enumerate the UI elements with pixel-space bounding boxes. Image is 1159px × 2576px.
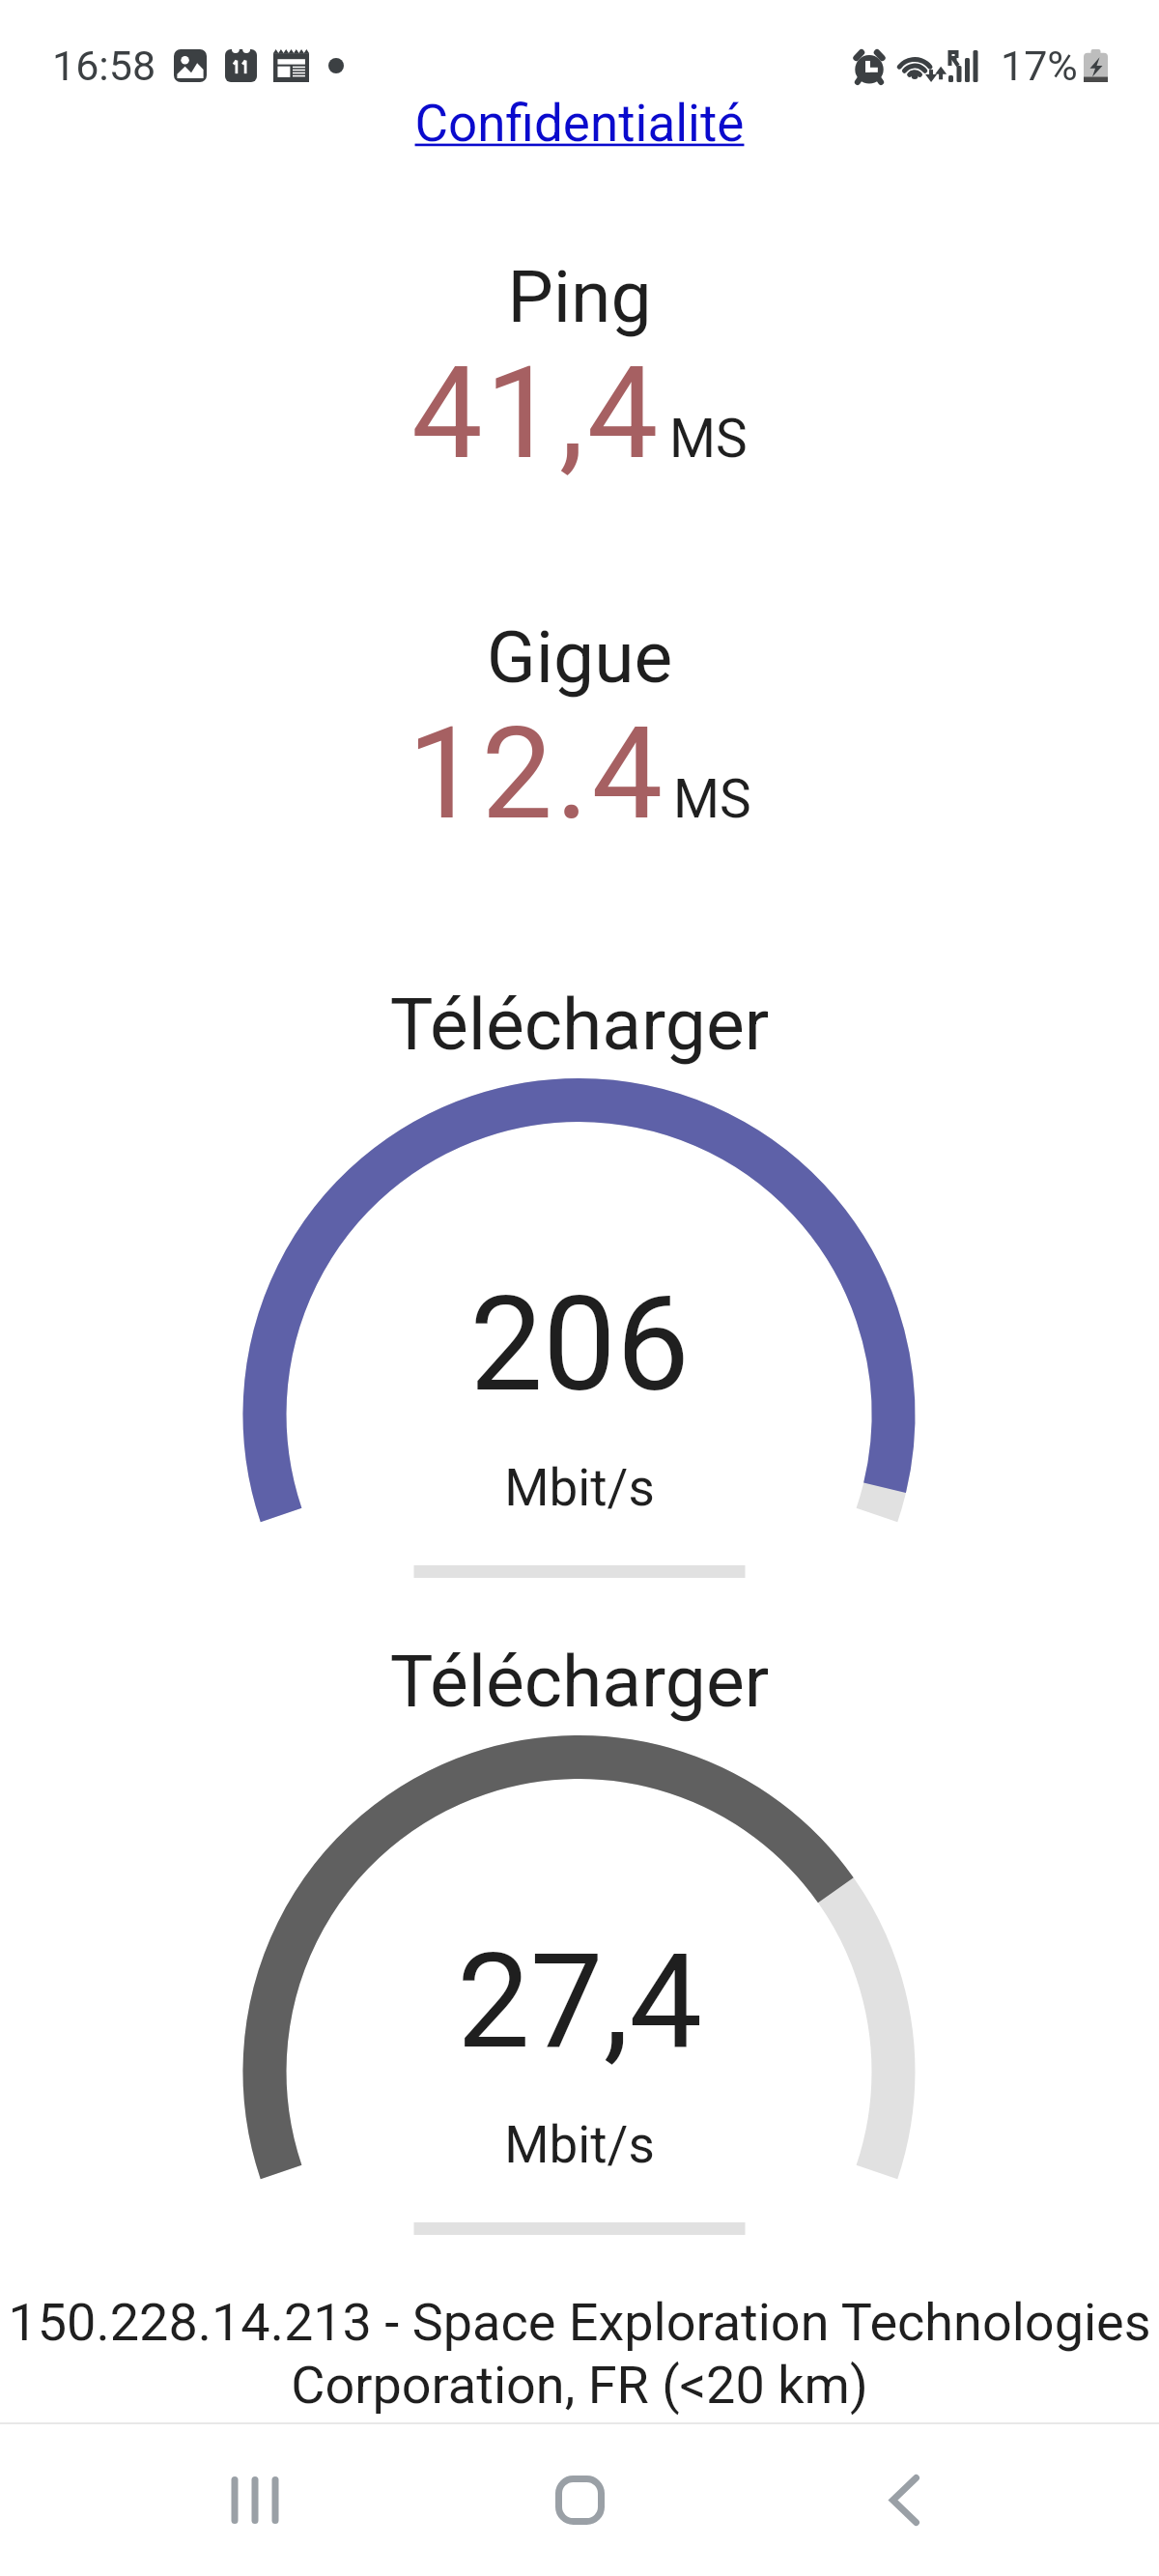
staticText: Mbit/s — [0, 1458, 1159, 1518]
staticText: Télécharger — [0, 982, 1159, 1067]
staticText: Ping — [0, 254, 1159, 339]
button[interactable]: Back — [742, 2424, 1066, 2576]
button[interactable]: Home — [417, 2424, 742, 2576]
staticText: Gigue — [0, 615, 1159, 700]
staticText: 12.4 — [408, 700, 665, 848]
staticText: 16:58 — [52, 42, 156, 90]
staticText: MS — [673, 768, 751, 830]
staticText: Confidentialité — [0, 94, 1159, 154]
staticText: 206 — [0, 1269, 1159, 1421]
staticText: 41,4 — [411, 339, 662, 488]
button[interactable]: Confidentialité — [0, 73, 1159, 151]
staticText: Télécharger — [0, 1639, 1159, 1724]
staticText: 150.228.14.213 - Space Exploration Techn… — [6, 2292, 1153, 2417]
staticText: Mbit/s — [0, 2115, 1159, 2175]
staticText: MS — [669, 408, 748, 470]
staticText: 27,4 — [0, 1926, 1159, 2078]
button[interactable]: Recent apps — [93, 2424, 417, 2576]
staticText: 17% — [1001, 42, 1078, 90]
